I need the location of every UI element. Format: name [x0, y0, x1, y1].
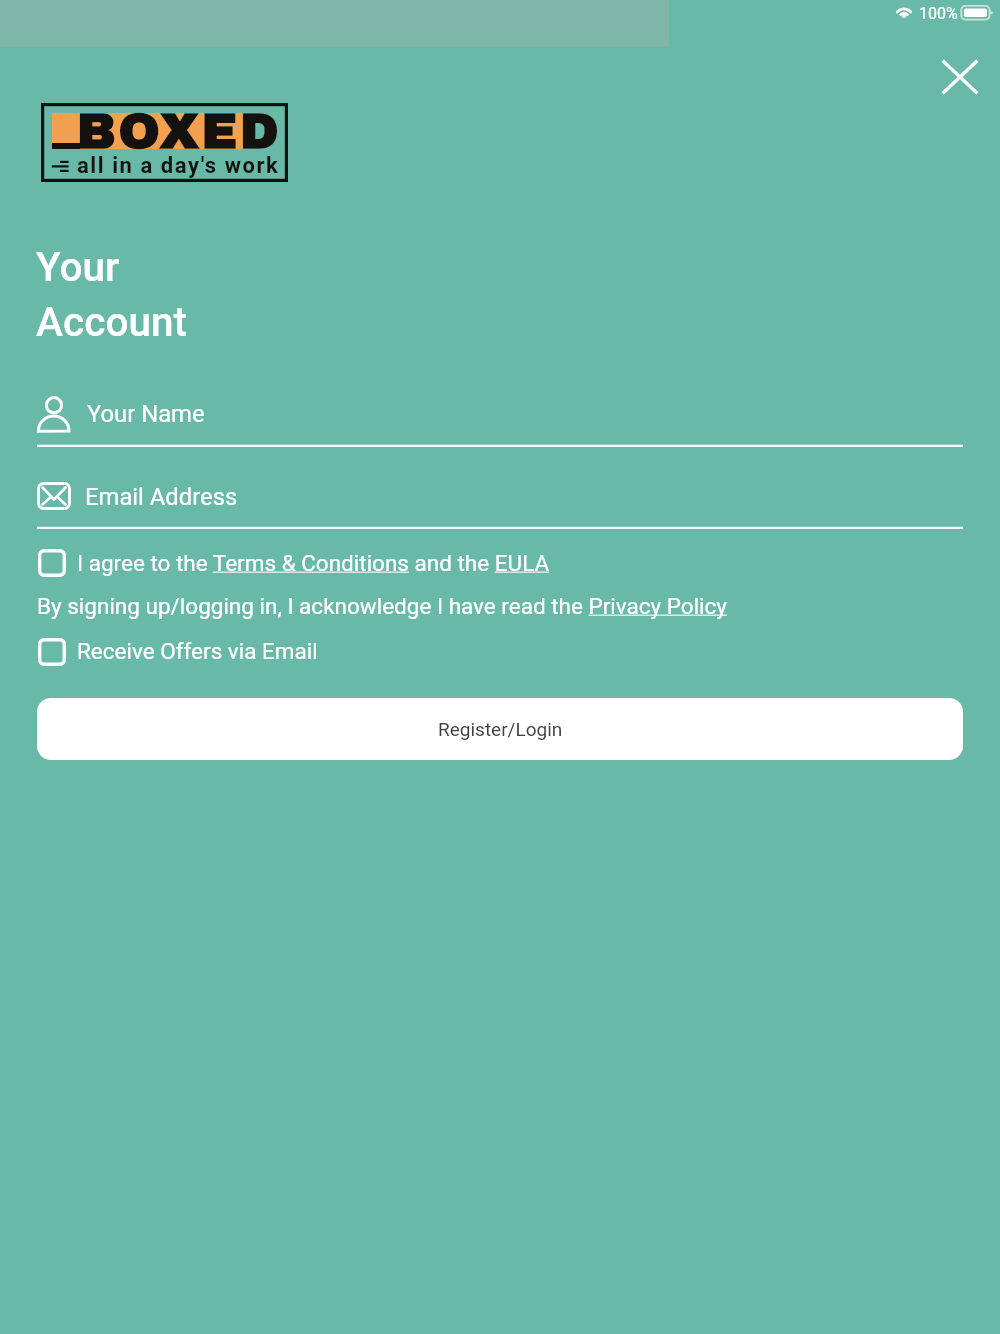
staticText: Receive Offers via Email	[77, 638, 318, 664]
button[interactable]: Register/Login	[37, 698, 963, 760]
button[interactable]: Receive Offers via Email	[38, 633, 318, 669]
button[interactable]: Close	[928, 45, 992, 109]
staticText: BOXED	[77, 105, 282, 159]
staticText: Register/Login	[438, 718, 563, 740]
button[interactable]: Email Address	[37, 466, 963, 529]
staticText: I agree to the Terms & Conditions and th…	[77, 550, 550, 576]
staticText: By signing up/logging in, I acknowledge …	[37, 593, 728, 619]
staticText: Email Address	[85, 483, 238, 511]
staticText: 100%	[919, 4, 958, 23]
staticText: all in a day's work	[77, 153, 280, 179]
staticText: Your Name	[87, 400, 205, 428]
button[interactable]: I agree to the Terms & Conditions and th…	[38, 545, 550, 581]
button[interactable]: Your Name	[37, 383, 963, 447]
staticText: Account	[36, 298, 187, 345]
staticText: Your	[36, 243, 120, 290]
